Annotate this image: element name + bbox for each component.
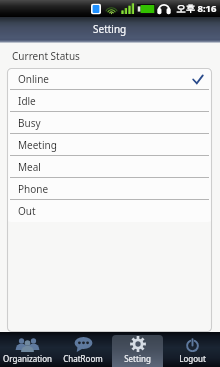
staticText: Logout (179, 353, 206, 364)
staticText: Out (18, 204, 36, 218)
staticText: Online (18, 72, 49, 86)
button[interactable]: Meeting (7, 134, 212, 156)
staticText: 오후 8:16 (176, 2, 217, 15)
button[interactable]: Phone (7, 178, 212, 200)
staticText: Setting (124, 353, 151, 364)
button[interactable]: Meal (7, 156, 212, 178)
other: Logout (185, 337, 200, 352)
staticText: Meal (18, 160, 41, 174)
staticText: Busy (18, 116, 41, 130)
staticText: ChatRoom (63, 353, 103, 364)
other: Setting (130, 336, 146, 352)
staticText: Idle (18, 94, 36, 108)
button[interactable]: Out (7, 200, 212, 222)
staticText: Phone (18, 182, 49, 196)
other: Chat Room (74, 337, 93, 352)
button[interactable]: Setting (112, 335, 163, 367)
other: Organization (17, 337, 38, 352)
button[interactable]: Busy (7, 112, 212, 134)
staticText: Organization (3, 353, 52, 364)
button[interactable]: Logout (167, 335, 218, 367)
button[interactable]: Organization (2, 335, 53, 367)
staticText: Setting (93, 22, 127, 36)
staticText: Current Status (12, 49, 80, 63)
button[interactable]: Idle (7, 90, 212, 112)
button[interactable]: Chat Room (57, 335, 108, 367)
button[interactable]: Online (7, 68, 212, 90)
staticText: Meeting (18, 138, 57, 152)
